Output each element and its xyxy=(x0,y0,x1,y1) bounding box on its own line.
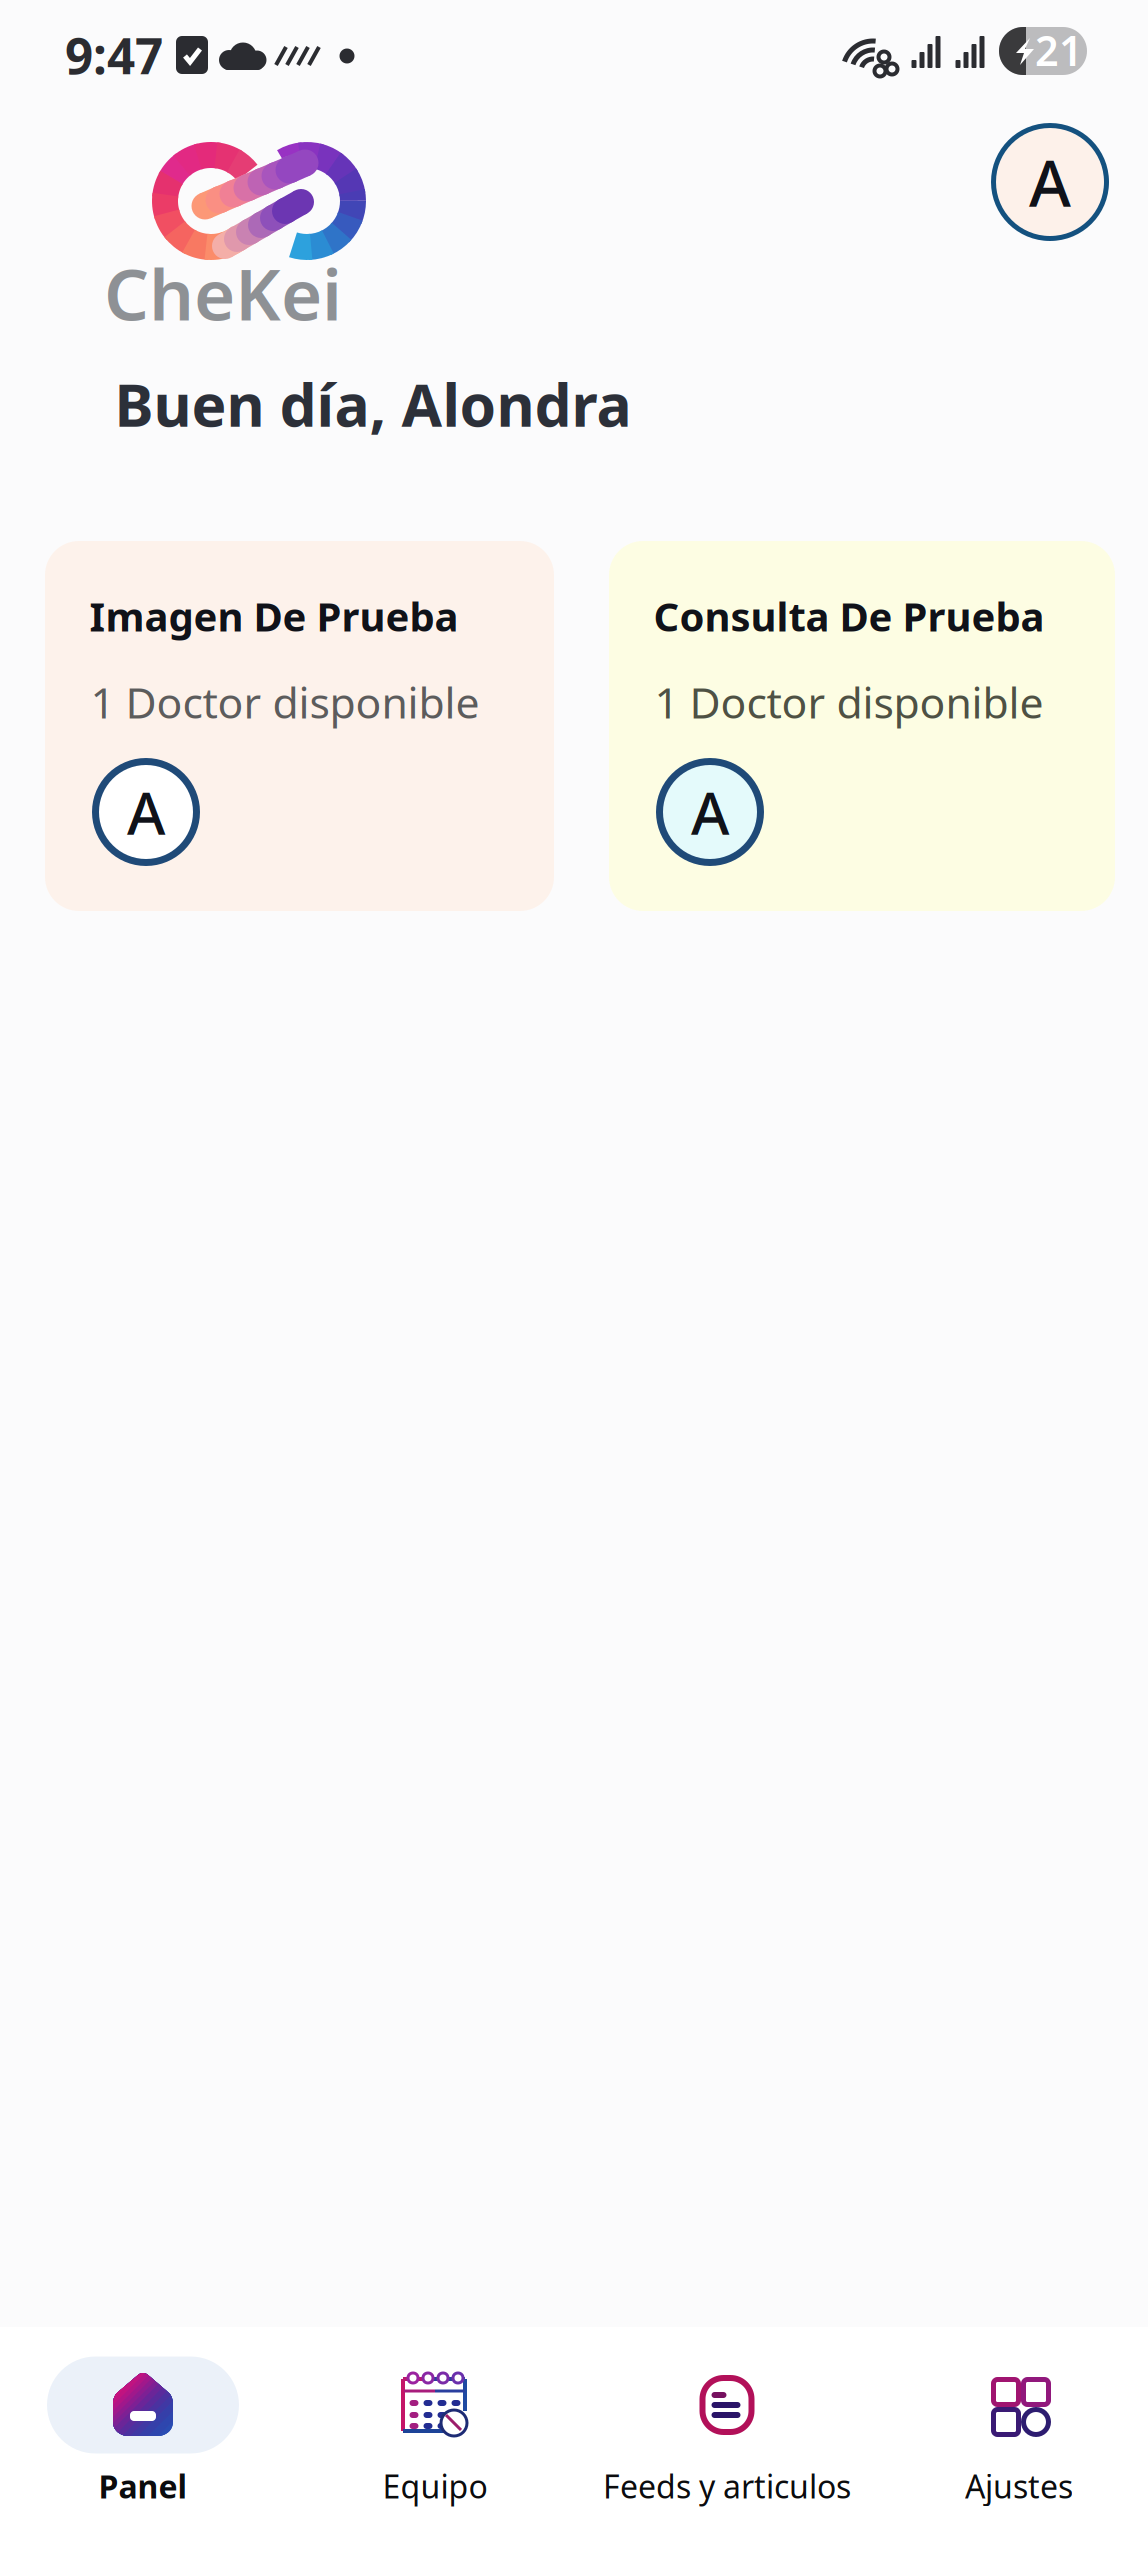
staticText: A xyxy=(1029,139,1071,224)
button[interactable]: Equipo xyxy=(0,2327,1148,2560)
staticText: CheKei xyxy=(104,246,342,340)
button[interactable]: Feeds y articulos xyxy=(0,2327,1148,2560)
staticText: 1 Doctor disponible xyxy=(654,674,1043,730)
staticText: A xyxy=(127,773,165,851)
staticText: 21 xyxy=(1035,23,1083,77)
staticText: A xyxy=(691,773,729,851)
button[interactable]: Perfil xyxy=(989,121,1111,243)
button[interactable]: Imagen De Prueba xyxy=(45,541,554,911)
staticText: Imagen De Prueba xyxy=(89,589,458,642)
staticText: Equipo xyxy=(382,2465,487,2507)
staticText: 9:47 xyxy=(65,22,163,88)
staticText: Ajustes xyxy=(965,2465,1073,2507)
button[interactable]: Ajustes xyxy=(0,2327,1148,2560)
staticText: Buen día, Alondra xyxy=(114,365,631,443)
button[interactable]: Consulta De Prueba xyxy=(609,541,1115,911)
staticText: Consulta De Prueba xyxy=(653,589,1044,642)
button[interactable]: Panel xyxy=(0,2327,1148,2560)
staticText: Panel xyxy=(98,2465,187,2507)
staticText: Feeds y articulos xyxy=(603,2465,851,2507)
staticText: 1 Doctor disponible xyxy=(90,674,479,730)
